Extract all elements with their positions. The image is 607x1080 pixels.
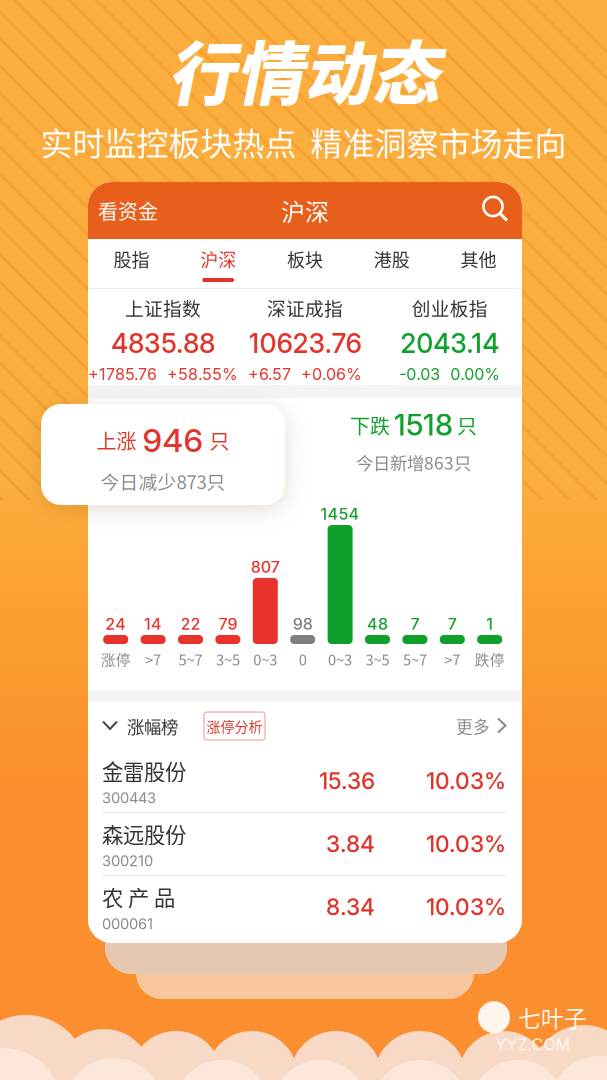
staticText: 跌停 bbox=[475, 648, 505, 670]
staticText: 000061 bbox=[102, 915, 153, 933]
staticText: >7 bbox=[145, 648, 161, 670]
staticText: 涨停 bbox=[101, 648, 131, 670]
button[interactable]: 看资金 bbox=[98, 182, 198, 239]
staticText: 3.84 bbox=[326, 830, 375, 858]
staticText: 10.03% bbox=[426, 830, 506, 858]
staticText: 10.03% bbox=[426, 893, 506, 921]
staticText: 深证成指 bbox=[267, 294, 343, 321]
staticText: 看资金 bbox=[98, 196, 158, 225]
button[interactable]: 农 产 品 bbox=[88, 876, 522, 938]
staticText: 今日新增863只 bbox=[356, 450, 471, 475]
staticText: 行情动态 bbox=[167, 20, 439, 118]
staticText: 3~5 bbox=[365, 648, 389, 670]
button[interactable]: 其他 bbox=[435, 239, 522, 289]
button[interactable]: 沪深 bbox=[175, 239, 262, 289]
button[interactable]: 涨幅榜 bbox=[103, 702, 193, 750]
staticText: 79 bbox=[218, 614, 237, 634]
staticText: 1518 bbox=[394, 407, 453, 443]
button[interactable]: Search bbox=[412, 182, 512, 239]
staticText: 0 bbox=[299, 648, 307, 670]
staticText: 14 bbox=[144, 614, 162, 634]
staticText: 7 bbox=[448, 614, 457, 634]
staticText: -0.03 0.00% bbox=[399, 364, 500, 384]
staticText: 只 bbox=[209, 426, 229, 455]
staticText: +1785.76 +58.55% bbox=[88, 364, 238, 384]
staticText: 0~3 bbox=[328, 648, 352, 670]
button[interactable]: 金雷股份 bbox=[88, 750, 522, 812]
staticText: 今日减少873只 bbox=[100, 468, 225, 495]
staticText: 只 bbox=[457, 410, 477, 439]
staticText: 3~5 bbox=[216, 648, 240, 670]
button[interactable]: 股指 bbox=[88, 239, 175, 289]
button[interactable]: 板块 bbox=[262, 239, 348, 289]
staticText: 807 bbox=[251, 557, 280, 577]
staticText: 946 bbox=[142, 421, 203, 460]
staticText: 实时监控板块热点 精准洞察市场走向 bbox=[40, 118, 566, 165]
staticText: 5~7 bbox=[403, 648, 427, 670]
staticText: 5~7 bbox=[178, 648, 202, 670]
staticText: 98 bbox=[293, 614, 313, 634]
staticText: 创业板指 bbox=[412, 294, 488, 321]
staticText: 24 bbox=[105, 614, 126, 634]
button[interactable]: 涨停分析 bbox=[204, 712, 265, 740]
staticText: 4835.88 bbox=[111, 327, 215, 359]
staticText: 港股 bbox=[374, 246, 410, 272]
staticText: 股指 bbox=[113, 246, 149, 272]
staticText: 10.03% bbox=[426, 767, 506, 795]
staticText: 上证指数 bbox=[125, 294, 201, 321]
staticText: 更多 bbox=[456, 714, 490, 738]
staticText: 金雷股份 bbox=[102, 755, 186, 786]
staticText: 300210 bbox=[102, 852, 153, 870]
staticText: 15.36 bbox=[319, 767, 375, 795]
staticText: 板块 bbox=[287, 246, 323, 272]
staticText: 48 bbox=[367, 614, 388, 634]
staticText: +6.57 +0.06% bbox=[248, 364, 362, 384]
staticText: 7 bbox=[410, 614, 419, 634]
staticText: 1454 bbox=[321, 504, 360, 524]
staticText: 2043.14 bbox=[400, 327, 499, 359]
staticText: 沪深 bbox=[281, 193, 329, 228]
staticText: 沪深 bbox=[200, 246, 236, 272]
staticText: 10623.76 bbox=[248, 327, 361, 359]
staticText: 森远股份 bbox=[102, 818, 186, 849]
staticText: 上涨 bbox=[96, 426, 136, 455]
staticText: 1 bbox=[486, 614, 493, 634]
button[interactable]: 港股 bbox=[348, 239, 435, 289]
staticText: 8.34 bbox=[326, 893, 375, 921]
staticText: 七叶子 bbox=[518, 1001, 587, 1034]
staticText: >7 bbox=[444, 648, 460, 670]
staticText: 0~3 bbox=[253, 648, 277, 670]
staticText: 涨停分析 bbox=[206, 716, 262, 736]
button[interactable]: 更多 bbox=[427, 702, 507, 750]
staticText: 22 bbox=[180, 614, 200, 634]
staticText: 其他 bbox=[461, 246, 497, 272]
staticText: 下跌 bbox=[350, 410, 390, 439]
staticText: 农 产 品 bbox=[102, 881, 175, 912]
staticText: YYZ.COM bbox=[495, 1035, 569, 1054]
staticText: 涨幅榜 bbox=[127, 713, 178, 739]
button[interactable]: 森远股份 bbox=[88, 813, 522, 875]
staticText: 300443 bbox=[102, 789, 156, 807]
